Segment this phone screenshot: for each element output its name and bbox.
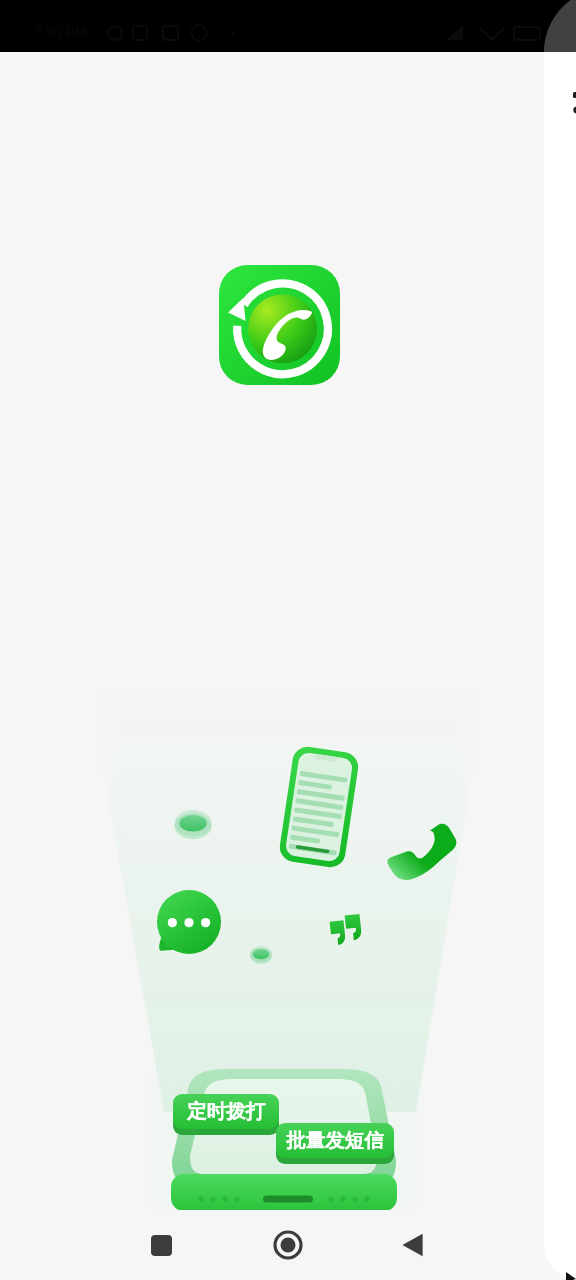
- button[interactable]: Recents: [126, 1220, 196, 1270]
- button[interactable]: 定时拨打: [173, 1094, 279, 1129]
- button[interactable]: Home: [253, 1220, 323, 1270]
- button[interactable]: Back: [378, 1220, 448, 1270]
- staticText: 批量发短信: [286, 1128, 384, 1153]
- staticText: 定时拨打: [187, 1099, 265, 1124]
- button[interactable]: 批量发短信: [276, 1123, 394, 1158]
